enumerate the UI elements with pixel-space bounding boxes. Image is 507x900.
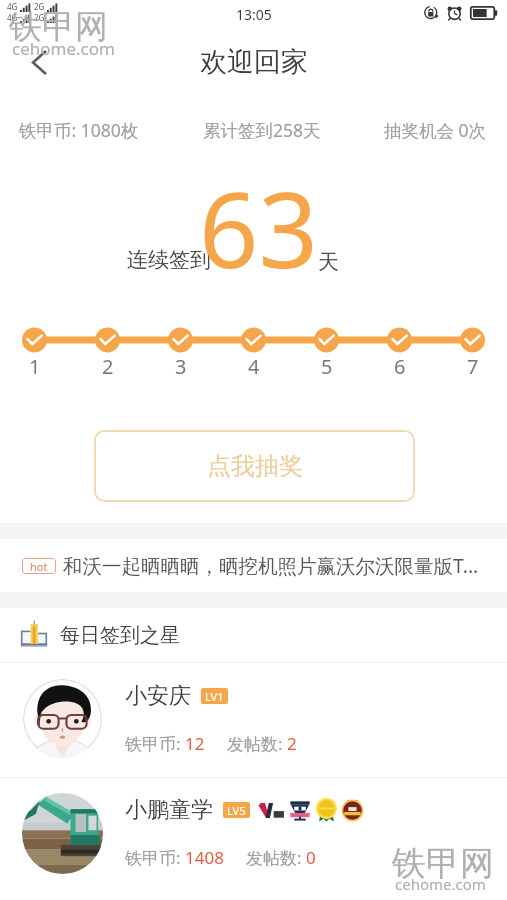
staticText: 累计签到258天 [203, 118, 321, 142]
staticText: LV1 [205, 689, 224, 704]
staticText: 小鹏童学 [125, 796, 213, 824]
staticText: LV5 [227, 803, 246, 818]
staticText: 铁甲币: [125, 732, 185, 755]
staticText: 4G [7, 1, 18, 12]
staticText: 7 [467, 353, 479, 380]
staticText: 12 [185, 732, 205, 755]
staticText: 5 [321, 353, 333, 380]
staticText: cehome.com [395, 874, 486, 894]
staticText: 2G [34, 1, 45, 12]
button[interactable]: Back [14, 35, 64, 85]
button[interactable]: hot [0, 539, 507, 592]
staticText: 欢迎回家 [200, 45, 308, 79]
staticText: 铁甲币: 1080枚 [19, 118, 139, 142]
staticText: 2G [34, 12, 45, 23]
staticText: 发帖数: [227, 732, 287, 755]
staticText: 4 [248, 353, 260, 380]
staticText: 连续签到 [127, 247, 211, 273]
staticText: 2 [287, 732, 297, 755]
staticText: 点我抽奖 [207, 451, 303, 481]
staticText: 63 [199, 157, 318, 299]
staticText: 和沃一起晒晒晒，晒挖机照片赢沃尔沃限量版T... [63, 552, 479, 579]
staticText: 6 [394, 353, 406, 380]
staticText: 天 [318, 249, 339, 275]
staticText: 铁甲币: [125, 846, 185, 869]
staticText: hot [30, 559, 48, 574]
staticText: 0 [306, 846, 316, 869]
staticText: 1 [29, 353, 41, 380]
staticText: 每日签到之星 [60, 623, 180, 648]
staticText: 2 [102, 353, 114, 380]
staticText: 13:05 [236, 5, 272, 24]
staticText: 抽奖机会 0次 [384, 118, 487, 142]
staticText: 4G [7, 12, 18, 23]
button[interactable]: 点我抽奖 [94, 430, 415, 502]
staticText: 发帖数: [246, 846, 306, 869]
staticText: cehome.com [12, 37, 115, 60]
staticText: 小安庆 [125, 682, 191, 710]
staticText: 铁甲网 [392, 842, 494, 885]
staticText: 铁甲网 [9, 6, 108, 48]
button[interactable]: 小安庆 [0, 663, 507, 777]
staticText: 1408 [185, 846, 224, 869]
staticText: 3 [175, 353, 187, 380]
button[interactable]: 小鹏童学 [0, 778, 507, 892]
